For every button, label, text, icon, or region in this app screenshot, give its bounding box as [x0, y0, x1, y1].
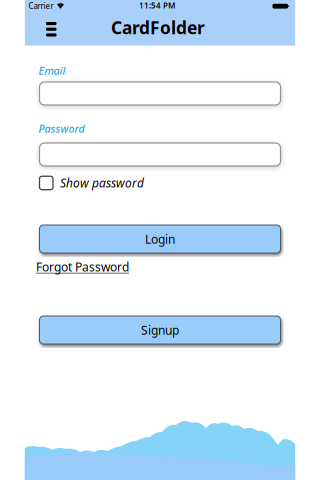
- staticText: 11:54 PM: [139, 0, 175, 11]
- staticText: Email: [38, 63, 65, 78]
- staticText: Forgot Password: [36, 259, 129, 275]
- button[interactable]: Password: [39, 143, 280, 166]
- button[interactable]: Show password: [39, 175, 144, 191]
- button[interactable]: Signup: [39, 316, 280, 344]
- button[interactable]: Forgot Password: [36, 259, 129, 275]
- button[interactable]: Login: [39, 225, 280, 253]
- staticText: Signup: [141, 322, 179, 338]
- staticText: Login: [145, 231, 175, 247]
- button[interactable]: Email: [39, 82, 280, 105]
- staticText: CardFolder: [111, 16, 205, 39]
- staticText: Carrier: [28, 0, 53, 11]
- staticText: Password: [38, 121, 84, 136]
- button[interactable]: Menu: [42, 18, 60, 40]
- staticText: Show password: [60, 175, 144, 191]
